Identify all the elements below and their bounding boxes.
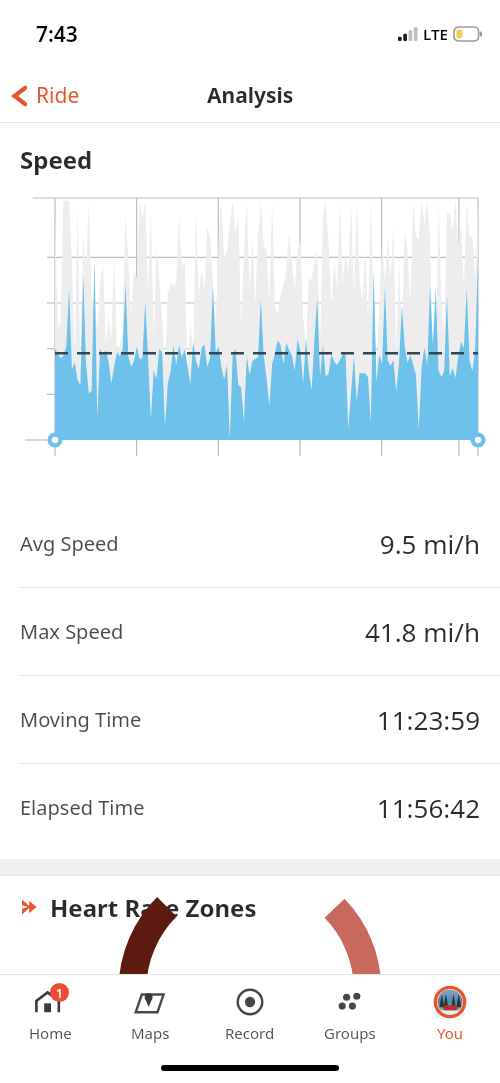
staticText: Maps [131,1023,170,1043]
button[interactable]: Maps [100,975,200,1053]
staticText: 9.5 mi/h [379,526,480,561]
button[interactable]: 1 [0,975,100,1053]
other: Record [233,985,267,1019]
button[interactable]: Max Speed [0,588,500,675]
button[interactable]: Moving Time [0,676,500,763]
staticText: 11:56:42 [376,790,480,825]
button[interactable]: Avg Speed [0,500,500,587]
button[interactable]: Groups [300,975,400,1053]
button[interactable]: You profile [400,975,500,1053]
staticText: Speed [20,143,93,176]
staticText: 1 [56,985,63,1001]
button[interactable]: Heart Rate Zones [0,876,500,938]
button[interactable]: Elapsed Time [0,764,500,851]
other: You profile [433,985,467,1019]
staticText: Groups [324,1023,376,1043]
staticText: You [437,1023,464,1043]
staticText: 41.8 mi/h [364,614,480,649]
staticText: Record [225,1023,275,1043]
staticText: Heart Rate Zones [50,891,257,924]
staticText: Home [29,1023,72,1043]
other: Maps [133,985,167,1019]
staticText: Elapsed Time [20,794,145,821]
button[interactable]: Record [200,975,300,1053]
staticText: Analysis [207,81,294,110]
button[interactable]: Ride [0,75,92,116]
staticText: Moving Time [20,706,142,733]
staticText: LTE [423,24,448,44]
staticText: 11:23:59 [376,702,480,737]
staticText: 7:43 [36,20,78,49]
staticText: Avg Speed [20,530,119,557]
staticText: Max Speed [20,618,124,645]
other: Groups [333,985,367,1019]
staticText: Ride [36,81,80,110]
